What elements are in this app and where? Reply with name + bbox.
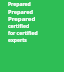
staticText: Prepared: [8, 1, 31, 8]
staticText: for certified: [8, 30, 38, 37]
staticText: Prepared: [8, 8, 33, 15]
staticText: Prepared: [8, 15, 36, 23]
staticText: experts: [8, 37, 27, 44]
staticText: certified: [8, 23, 30, 30]
